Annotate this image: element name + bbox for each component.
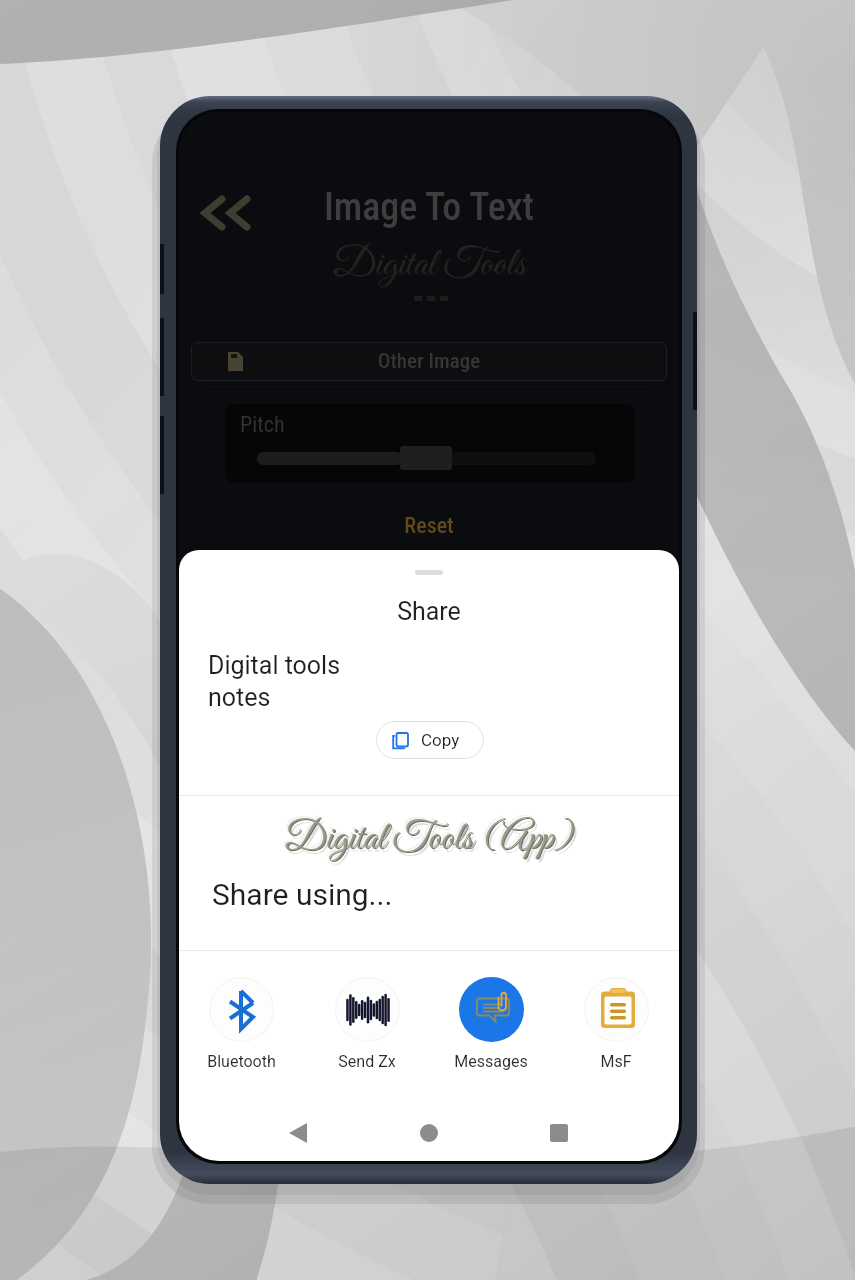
button[interactable]: Drag handle [389, 560, 469, 584]
staticText: MsF [600, 1052, 632, 1071]
staticText: Digital Tools [179, 240, 679, 290]
button[interactable]: Send Zx [315, 977, 419, 1087]
staticText: Image To Text [179, 185, 679, 230]
staticText: Other Image [191, 349, 667, 374]
button[interactable]: Recent apps [531, 1104, 587, 1161]
button[interactable]: MsF [564, 977, 668, 1087]
button[interactable]: Home [401, 1104, 457, 1161]
staticText: Digital Tools (App) [179, 815, 679, 864]
button[interactable]: Back [270, 1104, 326, 1161]
staticText: Reset [369, 513, 489, 539]
button[interactable]: Back [197, 188, 263, 240]
staticText: Send Zx [338, 1052, 396, 1071]
button[interactable]: Copy [376, 721, 484, 759]
staticText: Bluetooth [207, 1052, 276, 1071]
button[interactable]: Messages [439, 977, 543, 1087]
staticText: Copy [421, 730, 460, 750]
staticText: Share [179, 597, 679, 626]
staticText: Digital Tools (App) [182, 819, 679, 868]
staticText: Digital tools notes [208, 651, 341, 712]
button[interactable]: Other Image [191, 342, 667, 381]
button[interactable]: Reset [369, 506, 489, 540]
staticText: Pitch [240, 412, 285, 438]
staticText: Digital Tools [180, 241, 679, 291]
button[interactable]: Bluetooth [189, 977, 293, 1087]
staticText: Share using... [212, 877, 393, 912]
staticText: Messages [454, 1052, 528, 1071]
staticText: Digital Tools (App) [180, 816, 679, 865]
staticText: Digital Tools (App) [179, 813, 677, 862]
